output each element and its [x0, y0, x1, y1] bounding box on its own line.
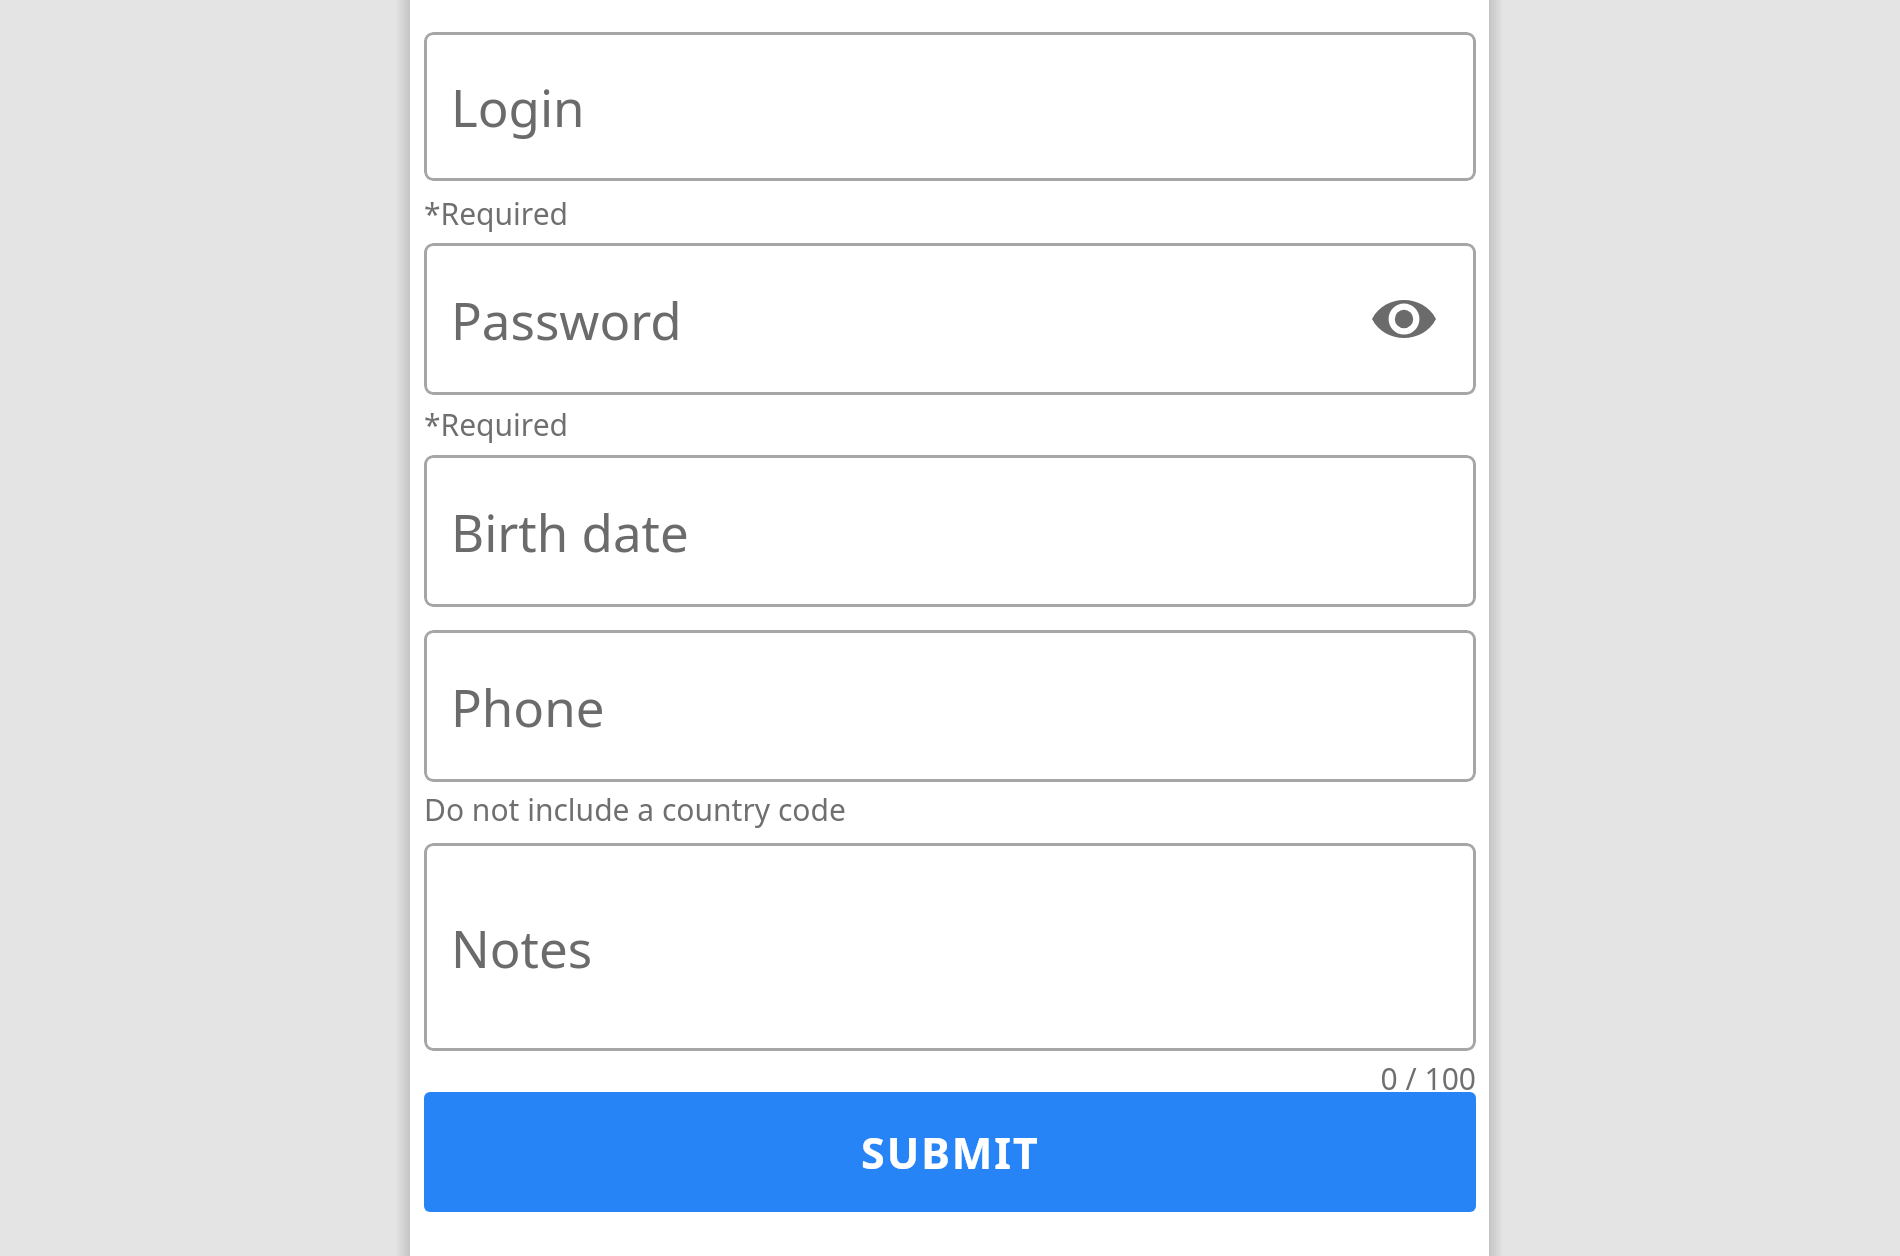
staticText: Do not include a country code	[424, 789, 846, 830]
button[interactable]: Show password	[1365, 280, 1443, 358]
staticText: Birth date	[451, 497, 689, 566]
button[interactable]: Birth date	[424, 455, 1476, 607]
staticText: Login	[451, 72, 585, 141]
button[interactable]: Notes	[424, 843, 1476, 1051]
button[interactable]: SUBMIT	[424, 1092, 1476, 1212]
staticText: *Required	[424, 193, 568, 234]
button[interactable]: Password	[424, 243, 1476, 395]
staticText: Phone	[451, 672, 605, 741]
staticText: *Required	[424, 404, 568, 445]
button[interactable]: Phone	[424, 630, 1476, 782]
button[interactable]: Login	[424, 32, 1476, 181]
staticText: 0 / 100	[424, 1058, 1476, 1099]
staticText: Notes	[451, 913, 593, 982]
staticText: Password	[451, 285, 682, 354]
staticText: SUBMIT	[861, 1123, 1040, 1182]
